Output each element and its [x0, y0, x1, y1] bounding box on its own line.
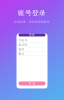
- staticText: 手机号: [18, 39, 27, 42]
- staticText: 登录: [29, 33, 35, 37]
- staticText: 登 录: [28, 82, 35, 85]
- staticText: 欢迎回来，请登录您的账号: [14, 20, 50, 23]
- staticText: 账号登录: [18, 9, 46, 17]
- staticText: 密码: [18, 48, 24, 51]
- staticText: 验证码: [18, 43, 27, 46]
- staticText: 确认: [18, 52, 24, 55]
